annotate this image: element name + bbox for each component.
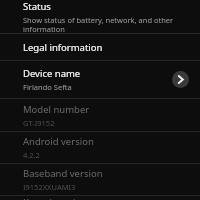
- staticText: GT-I9152: [23, 118, 55, 128]
- staticText: Model number: [23, 103, 90, 116]
- button[interactable]: Legal information: [0, 34, 200, 60]
- button[interactable]: Android version: [0, 132, 200, 163]
- staticText: Kernel version: [23, 196, 88, 200]
- staticText: Legal information: [23, 41, 103, 54]
- button[interactable]: Baseband version: [0, 164, 200, 195]
- staticText: I9152XXUAMI3: [23, 182, 76, 192]
- staticText: Status: [23, 0, 51, 13]
- button[interactable]: Status: [0, 0, 200, 33]
- button[interactable]: Model number: [0, 99, 200, 131]
- staticText: Android version: [23, 135, 94, 148]
- staticText: 4.2.2: [23, 150, 40, 160]
- button[interactable]: Device name: [0, 61, 200, 98]
- staticText: Device name: [23, 67, 81, 80]
- staticText: Show status of battery, network, and oth…: [23, 15, 192, 33]
- button[interactable]: Edit device name: [172, 71, 189, 88]
- button[interactable]: Kernel version: [0, 196, 200, 200]
- staticText: Baseband version: [23, 167, 103, 180]
- staticText: Firlando Sefta: [23, 82, 72, 92]
